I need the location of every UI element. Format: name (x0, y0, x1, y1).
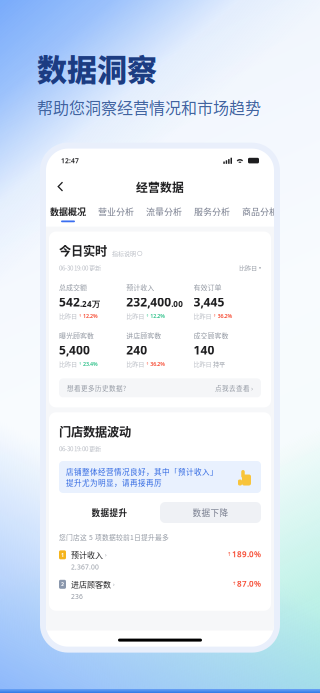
staticText: 比昨日 (59, 311, 77, 320)
staticText: 持平 (213, 359, 225, 368)
staticText: 您门店这 5 项数据较前1日提升最多 (59, 532, 169, 542)
staticText: 点我去查看 › (215, 383, 253, 393)
button[interactable]: 返回 (50, 174, 71, 199)
staticText: 店铺整体经营情况良好，其中「预计收入」提升尤为明显，请再接再厉 (66, 466, 218, 488)
button[interactable]: 流量分析 (146, 201, 182, 227)
staticText: 比昨日 (194, 311, 212, 320)
staticText: 总成交额 (59, 282, 87, 292)
button[interactable]: 2 (59, 578, 261, 601)
staticText: 服务分析 (194, 205, 230, 218)
staticText: 12:47 (61, 156, 79, 165)
staticText: 06-30 19:00 更新 (59, 263, 101, 272)
staticText: 成交顾客数 (194, 330, 229, 340)
staticText: 指标说明 (112, 249, 136, 258)
staticText: 进店顾客数 (126, 330, 161, 340)
staticText: 236 (71, 592, 83, 601)
staticText: 比昨日 (126, 311, 144, 320)
staticText: 2 (61, 581, 64, 588)
staticText: ▾ (259, 265, 261, 270)
staticText: ↑ (146, 362, 149, 366)
staticText: 1 (61, 551, 64, 558)
staticText: 比昨日 (239, 263, 257, 272)
staticText: ↑ (146, 313, 149, 318)
staticText: 曝光顾客数 (59, 330, 94, 340)
staticText: 189.0% (232, 549, 261, 559)
staticText: .24万 (80, 299, 100, 309)
staticText: 比昨日 (59, 359, 77, 368)
staticText: ↑ (78, 362, 81, 366)
staticText: 门店数据波动 (59, 422, 131, 440)
staticText: 商品分析 (242, 205, 278, 218)
button[interactable]: 1 (59, 549, 261, 571)
staticText: 12.2% (150, 312, 165, 319)
staticText: 5,400 (59, 342, 90, 358)
staticText: 240 (126, 342, 147, 358)
staticText: 进店顾客数 (71, 578, 111, 590)
staticText: 想看更多历史数据? (67, 383, 126, 393)
staticText: 36.2% (150, 360, 165, 367)
button[interactable]: 服务分析 (194, 201, 230, 227)
staticText: 比昨日 (194, 359, 212, 368)
staticText: 预计收入 (71, 549, 103, 560)
staticText: ↑ (227, 551, 231, 557)
staticText: 06-30 19:00 更新 (59, 444, 101, 453)
staticText: 23.4% (83, 360, 98, 367)
staticText: ↑ (213, 313, 216, 318)
staticText: 2,367.00 (71, 562, 99, 571)
staticText: 36.2% (218, 312, 233, 319)
staticText: 3,445 (194, 294, 225, 310)
staticText: 帮助您洞察经营情况和市场趋势 (37, 95, 261, 119)
staticText: 今日实时 (59, 242, 107, 259)
staticText: 预计收入 (126, 282, 154, 292)
staticText: 营业分析 (98, 205, 134, 218)
staticText: 流量分析 (146, 205, 182, 218)
button[interactable]: 数据下降 (160, 502, 261, 523)
staticText: 比昨日 (126, 359, 144, 368)
staticText: 12.2% (83, 312, 98, 319)
staticText: 数据洞察 (37, 46, 157, 89)
button[interactable]: 数据概况 (50, 201, 86, 227)
staticText: .00 (171, 299, 183, 309)
staticText: › (105, 551, 107, 558)
staticText: 数据提升 (91, 506, 127, 519)
staticText: 数据下降 (192, 506, 228, 519)
staticText: 140 (194, 342, 215, 358)
staticText: 232,400 (126, 294, 171, 310)
staticText: › (113, 580, 115, 588)
staticText: 542 (59, 294, 80, 310)
staticText: ↑ (232, 581, 236, 587)
staticText: 87.0% (237, 578, 261, 589)
button[interactable]: 数据提升 (59, 502, 160, 523)
button[interactable]: 营业分析 (98, 201, 134, 227)
staticText: 有效订单 (194, 282, 222, 292)
button[interactable]: 想看更多历史数据? (59, 378, 261, 397)
staticText: ↑ (78, 313, 81, 318)
staticText: 经营数据 (136, 178, 184, 195)
button[interactable]: 商品分析 (242, 201, 278, 227)
staticText: 数据概况 (50, 205, 86, 218)
